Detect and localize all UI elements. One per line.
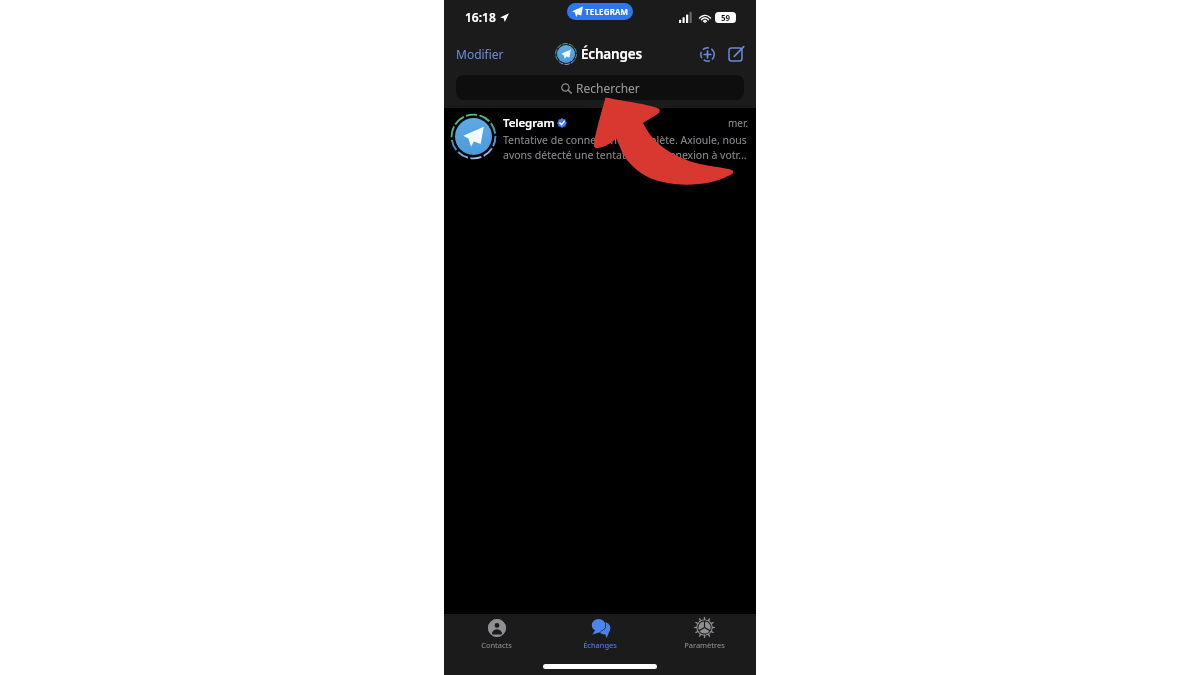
- button[interactable]: Échanges: [548, 614, 652, 652]
- staticText: Paramètres: [684, 640, 725, 650]
- staticText: 16:18: [465, 9, 496, 25]
- staticText: 59: [721, 12, 731, 23]
- button[interactable]: Contacts: [444, 614, 548, 652]
- staticText: Rechercher: [576, 80, 640, 96]
- staticText: Contacts: [481, 640, 512, 650]
- button[interactable]: Add story: [695, 42, 719, 66]
- button[interactable]: Compose new message: [723, 42, 747, 66]
- staticText: TELEGRAM: [585, 6, 629, 17]
- button[interactable]: Telegram: [444, 108, 756, 163]
- staticText: Tentative de connexion incomplète. Axiou…: [503, 133, 749, 162]
- button[interactable]: Paramètres: [652, 614, 756, 652]
- button[interactable]: Modifier: [444, 42, 510, 66]
- button[interactable]: Rechercher: [456, 75, 744, 100]
- staticText: Échanges: [581, 45, 642, 63]
- staticText: mer.: [728, 116, 749, 130]
- staticText: Telegram: [503, 115, 555, 131]
- staticText: Échanges: [583, 640, 617, 650]
- button[interactable]: TELEGRAM: [567, 3, 633, 20]
